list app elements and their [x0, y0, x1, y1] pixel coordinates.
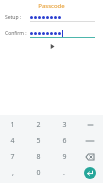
button[interactable]: Submit [47, 41, 57, 51]
staticText: 0 [36, 168, 41, 178]
button[interactable]: Backspace [77, 149, 103, 165]
button[interactable]: Long dash [77, 133, 103, 149]
button[interactable]: Dash [77, 117, 103, 133]
staticText: , [12, 168, 14, 178]
staticText: 2 [36, 120, 41, 130]
staticText: 8 [36, 152, 41, 162]
button[interactable]: Setup : [0, 12, 103, 23]
button[interactable]: 4 [0, 133, 25, 149]
staticText: Confirm : [5, 30, 27, 37]
button[interactable]: 9 [51, 149, 77, 165]
staticText: Passcode [38, 2, 65, 10]
staticText: 1 [10, 120, 15, 130]
button[interactable]: 1 [0, 117, 25, 133]
staticText: 4 [10, 136, 15, 146]
staticText: . [63, 168, 65, 178]
button[interactable]: . [51, 165, 77, 181]
button[interactable]: 5 [25, 133, 51, 149]
button[interactable]: 6 [51, 133, 77, 149]
button[interactable]: Confirm : [0, 28, 103, 39]
staticText: 5 [36, 136, 41, 146]
button[interactable]: 0 [25, 165, 51, 181]
button[interactable]: 7 [0, 149, 25, 165]
staticText: 6 [62, 136, 67, 146]
staticText: 9 [62, 152, 67, 162]
button[interactable]: Enter [77, 165, 103, 181]
staticText: 7 [10, 152, 15, 162]
button[interactable]: 2 [25, 117, 51, 133]
button[interactable]: , [0, 165, 25, 181]
staticText: Setup : [5, 14, 22, 21]
button[interactable]: 8 [25, 149, 51, 165]
staticText: 3 [62, 120, 67, 130]
button[interactable]: 3 [51, 117, 77, 133]
